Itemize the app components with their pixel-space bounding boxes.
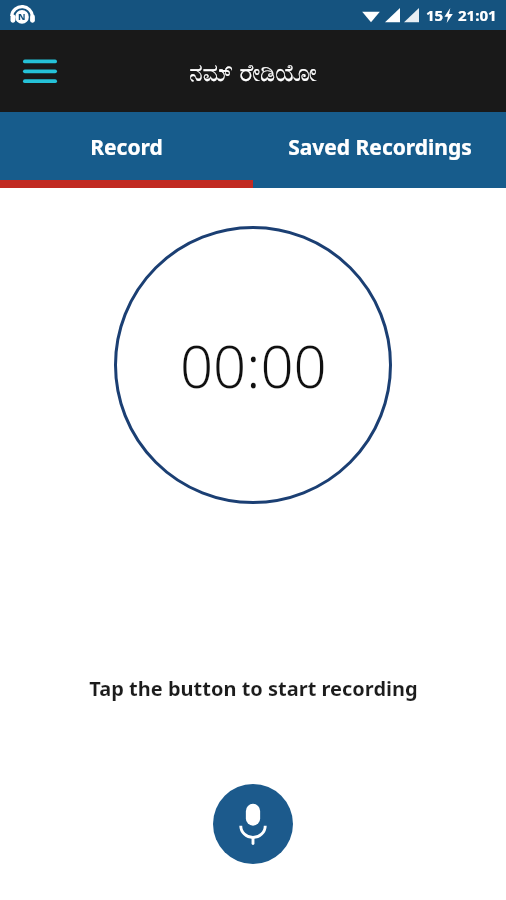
staticText: 21:01 xyxy=(458,5,497,25)
button[interactable]: Open navigation menu xyxy=(16,47,64,95)
staticText: 00:00 xyxy=(180,326,327,405)
button[interactable]: Record xyxy=(0,112,253,188)
staticText: Tap the button to start recording xyxy=(89,675,418,702)
button[interactable]: Start recording xyxy=(213,784,293,864)
button[interactable]: Saved Recordings xyxy=(253,112,506,188)
staticText: ನಮ್ ರೇಡಿಯೋ xyxy=(189,55,317,88)
staticText: Record xyxy=(90,133,163,162)
staticText: Saved Recordings xyxy=(288,133,472,162)
staticText: 15 xyxy=(426,5,444,25)
staticText: N xyxy=(18,10,26,22)
